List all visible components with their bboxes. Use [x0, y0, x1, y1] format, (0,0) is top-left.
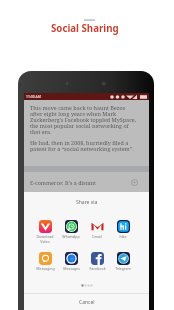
staticText: WhatsApp — [62, 234, 80, 239]
button[interactable]: Messages — [59, 252, 83, 271]
staticText: E-commerce: It's a distant — [30, 179, 96, 186]
button[interactable]: Telegram — [111, 252, 135, 271]
staticText: This move came back to haunt Bezos after… — [30, 104, 138, 136]
staticText: Telegram — [115, 266, 131, 271]
button[interactable]: Facebook — [85, 252, 109, 271]
button[interactable]: Messaging — [33, 252, 57, 271]
button[interactable]: Gmail — [85, 220, 109, 239]
button[interactable]: WhatsApp — [59, 220, 83, 239]
staticText: Download Video — [33, 234, 57, 244]
staticText: Social Sharing — [51, 22, 119, 35]
staticText: Messaging — [36, 266, 55, 271]
staticText: 11:00 AM — [26, 94, 41, 99]
staticText: He had, then in 2008, hurriedly filed a … — [30, 139, 138, 153]
staticText: Cancel — [79, 299, 95, 306]
button[interactable]: Social Sharing — [51, 22, 119, 35]
staticText: Share via — [76, 199, 98, 206]
other: Share — [131, 179, 138, 186]
staticText: Facebook — [89, 266, 106, 271]
button[interactable]: Cancel — [24, 294, 149, 310]
staticText: hike — [119, 234, 127, 239]
button[interactable]: hike — [111, 220, 135, 239]
staticText: Messages — [63, 266, 80, 271]
button[interactable]: E-commerce: It's a distant — [30, 176, 138, 188]
button[interactable]: Download Video — [33, 220, 57, 244]
staticText: Gmail — [92, 234, 102, 239]
